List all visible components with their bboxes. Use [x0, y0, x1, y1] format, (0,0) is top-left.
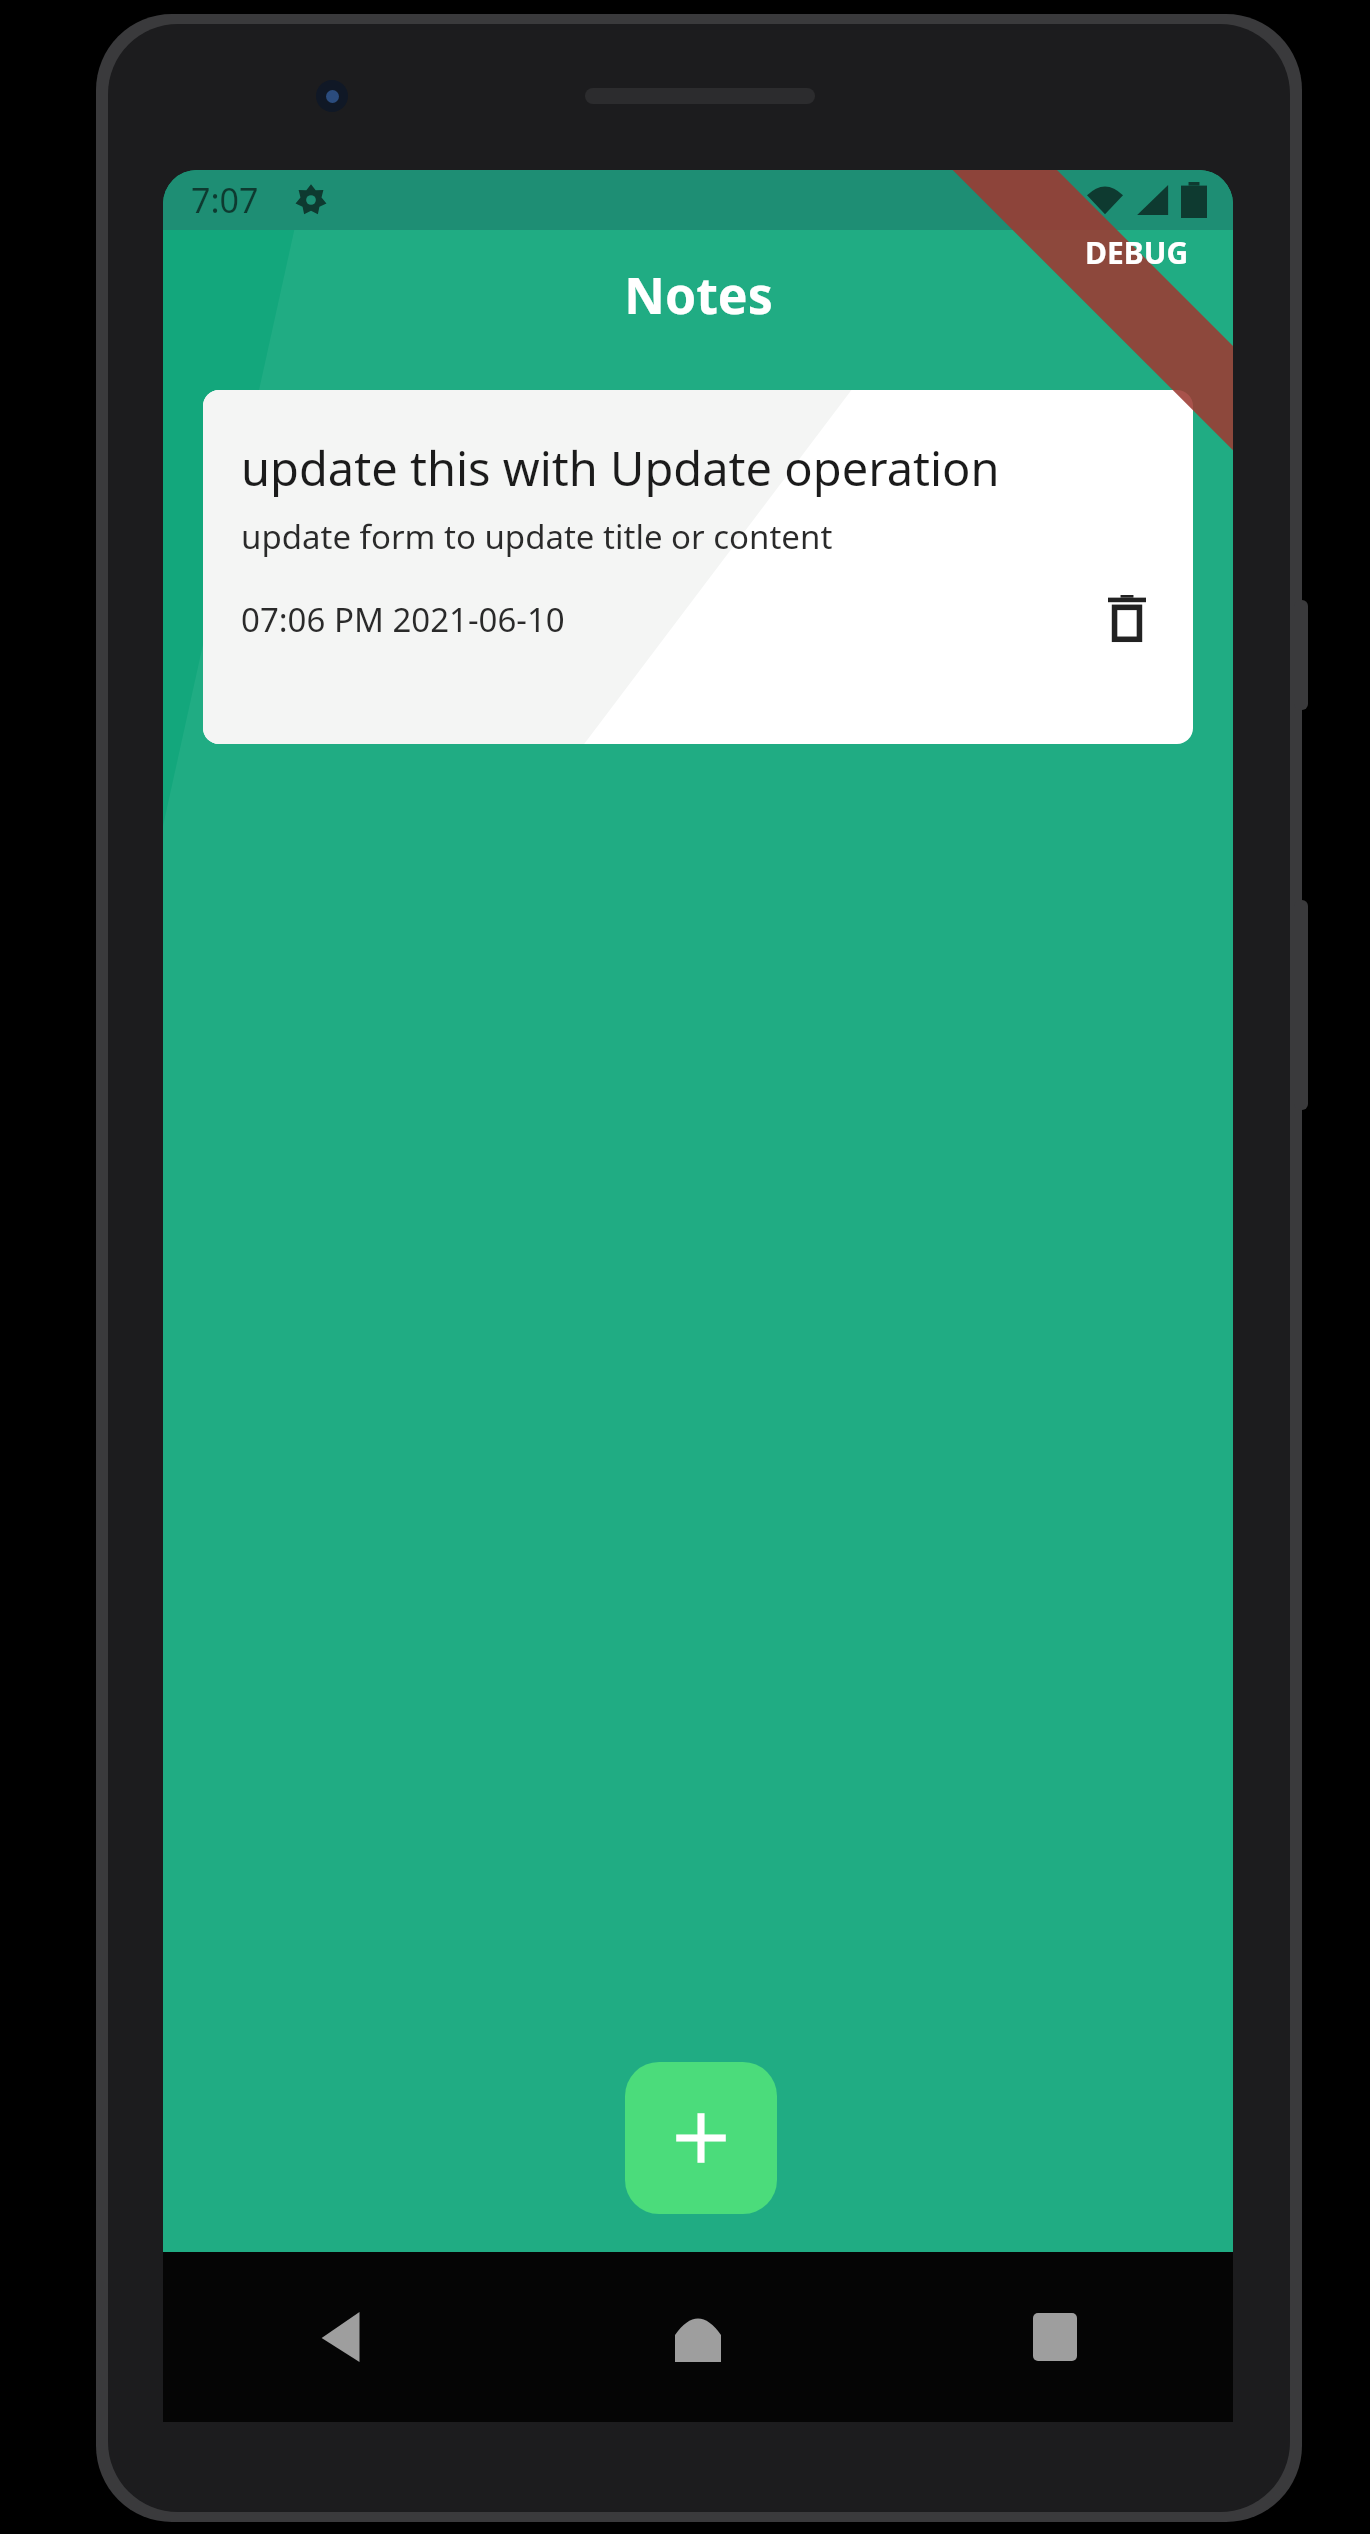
- staticText: 07:06 PM 2021-06-10: [241, 597, 565, 642]
- button[interactable]: Add note: [625, 2062, 777, 2214]
- button[interactable]: update this with Update operation: [203, 390, 1193, 744]
- staticText: 7:07: [191, 177, 259, 223]
- staticText: Notes: [624, 261, 773, 329]
- staticText: update this with Update operation: [241, 436, 1000, 500]
- button[interactable]: Recent apps: [876, 2252, 1233, 2422]
- staticText: update form to update title or content: [241, 514, 833, 559]
- button[interactable]: Home: [519, 2252, 876, 2422]
- staticText: DEBUG: [1085, 232, 1189, 273]
- button[interactable]: Back: [163, 2252, 519, 2422]
- button[interactable]: Delete note: [1095, 587, 1159, 651]
